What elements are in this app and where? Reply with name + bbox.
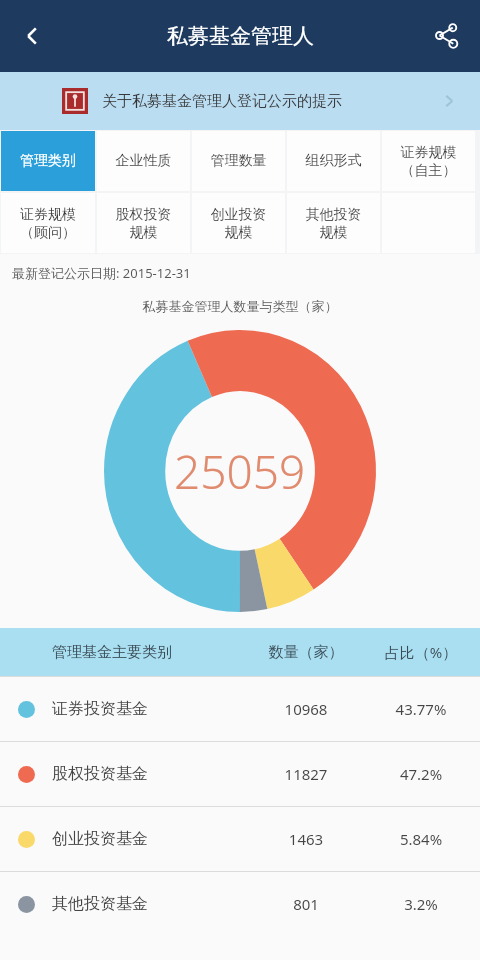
button[interactable]: 股权投资 规模 (97, 193, 190, 253)
button[interactable]: 证券规模 （顾问） (1, 193, 95, 253)
button[interactable]: 其他投资基金 (0, 872, 480, 936)
staticText: 占比（%） (362, 642, 480, 662)
staticText: 证券规模 （自主） (382, 144, 475, 179)
button[interactable]: 创业投资 规模 (192, 193, 285, 253)
button[interactable]: 证券投资基金 (0, 677, 480, 741)
staticText: 其他投资基金 (52, 894, 148, 914)
staticText: 证券投资基金 (52, 699, 148, 719)
staticText: 25059 (174, 440, 306, 503)
button[interactable]: Back (6, 10, 58, 62)
staticText: 管理类别 (1, 152, 95, 170)
staticText: 数量（家） (250, 643, 362, 662)
staticText: 私募基金管理人 (167, 23, 314, 49)
staticText: 创业投资基金 (52, 829, 148, 849)
button[interactable]: Share (420, 10, 472, 62)
staticText: 组织形式 (287, 152, 380, 170)
button[interactable]: 管理类别 (1, 131, 95, 191)
staticText: 关于私募基金管理人登记公示的提示 (102, 92, 342, 111)
button[interactable]: 证券规模 （自主） (382, 131, 475, 191)
staticText: 管理数量 (192, 152, 285, 170)
staticText: 企业性质 (97, 152, 190, 170)
staticText: 证券规模 （顾问） (1, 206, 95, 241)
button[interactable]: 企业性质 (97, 131, 190, 191)
button[interactable]: 创业投资基金 (0, 807, 480, 871)
staticText: 创业投资 规模 (192, 206, 285, 241)
staticText: 10968 (250, 699, 362, 719)
staticText: 11827 (250, 764, 362, 784)
button[interactable]: 股权投资基金 (0, 742, 480, 806)
staticText: 股权投资基金 (52, 764, 148, 784)
staticText: 私募基金管理人数量与类型（家） (0, 298, 480, 314)
staticText: 1463 (250, 829, 362, 849)
staticText: 管理基金主要类别 (52, 643, 172, 662)
button[interactable]: 管理数量 (192, 131, 285, 191)
staticText: 3.2% (362, 894, 480, 914)
button[interactable]: 组织形式 (287, 131, 380, 191)
staticText: 最新登记公示日期: 2015-12-31 (12, 264, 191, 282)
staticText: 其他投资 规模 (287, 206, 380, 241)
button[interactable]: 其他投资 规模 (287, 193, 380, 253)
staticText: 股权投资 规模 (97, 206, 190, 241)
staticText: 801 (250, 894, 362, 914)
staticText: 47.2% (362, 764, 480, 784)
button[interactable]: 关于私募基金管理人登记公示的提示 (0, 72, 480, 130)
staticText: 5.84% (362, 829, 480, 849)
staticText: 43.77% (362, 699, 480, 719)
